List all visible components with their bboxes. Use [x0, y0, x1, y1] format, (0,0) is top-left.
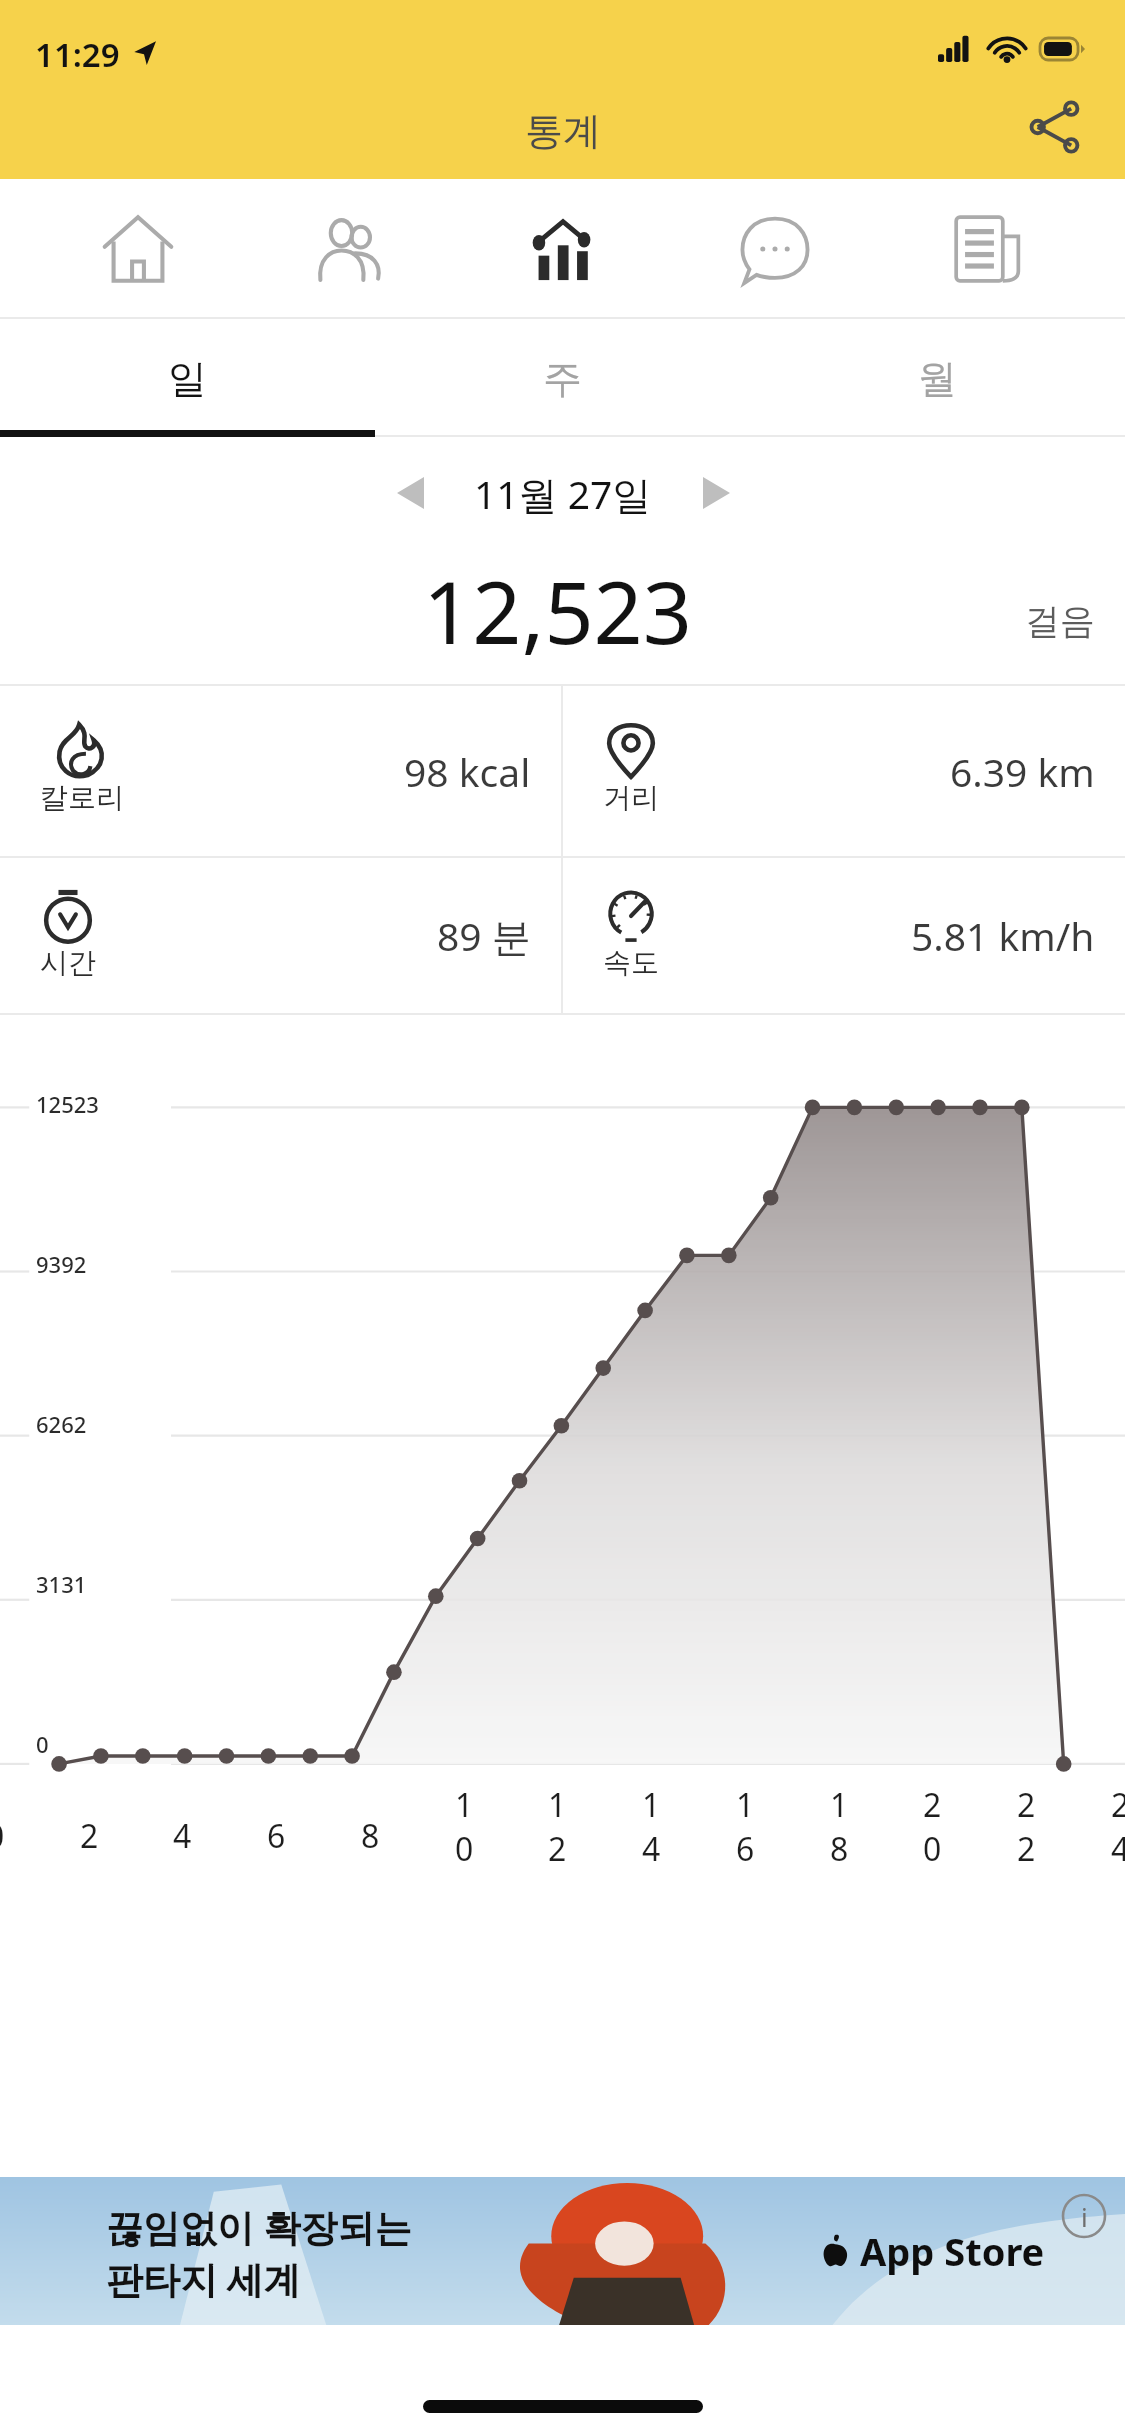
button[interactable]: Statistics — [488, 179, 638, 319]
staticText: 속도 — [603, 945, 659, 980]
button[interactable]: 시간 — [0, 858, 561, 1013]
button[interactable]: Next day — [678, 455, 754, 531]
button[interactable]: Previous day — [372, 455, 448, 531]
staticText: 5.81 km/h — [911, 909, 1095, 962]
button[interactable]: 끊임없이 확장되는 — [0, 2177, 1125, 2325]
button[interactable]: News — [913, 179, 1063, 319]
staticText: i — [1081, 2199, 1088, 2234]
staticText: 일 — [168, 354, 207, 403]
staticText: 끊임없이 확장되는 — [106, 2201, 412, 2252]
staticText: 0 — [36, 1729, 49, 1759]
staticText: App Store — [860, 2225, 1045, 2277]
button[interactable]: Messages — [700, 179, 850, 319]
staticText: 월 — [918, 354, 957, 403]
staticText: 6262 — [36, 1409, 87, 1439]
button[interactable]: 월 — [750, 319, 1125, 437]
staticText: 6.39 km — [950, 745, 1095, 798]
staticText: 주 — [543, 354, 582, 403]
button[interactable]: Share — [1007, 79, 1103, 175]
staticText: 98 kcal — [404, 745, 531, 798]
button[interactable]: Friends — [275, 179, 425, 319]
button[interactable]: 주 — [375, 319, 750, 437]
staticText: 시간 — [40, 945, 96, 980]
staticText: 11:29 — [35, 32, 120, 77]
staticText: 11월 27일 — [474, 467, 652, 520]
staticText: 89 분 — [437, 909, 531, 962]
staticText: 거리 — [603, 780, 659, 815]
staticText: 12523 — [36, 1089, 99, 1119]
staticText: 9392 — [36, 1249, 87, 1279]
staticText: 12,523 — [423, 552, 693, 669]
staticText: 통계 — [525, 107, 601, 155]
button[interactable]: 속도 — [563, 858, 1125, 1013]
button[interactable]: 칼로리 — [0, 686, 561, 856]
button[interactable]: Ad information — [1061, 2193, 1107, 2239]
staticText: 3131 — [36, 1569, 87, 1599]
staticText: 칼로리 — [40, 780, 124, 815]
button[interactable]: 일 — [0, 319, 375, 437]
button[interactable]: 거리 — [563, 686, 1125, 856]
staticText: 판타지 세계 — [106, 2253, 301, 2304]
staticText: 걸음 — [1025, 599, 1095, 643]
button[interactable]: Home — [63, 179, 213, 319]
